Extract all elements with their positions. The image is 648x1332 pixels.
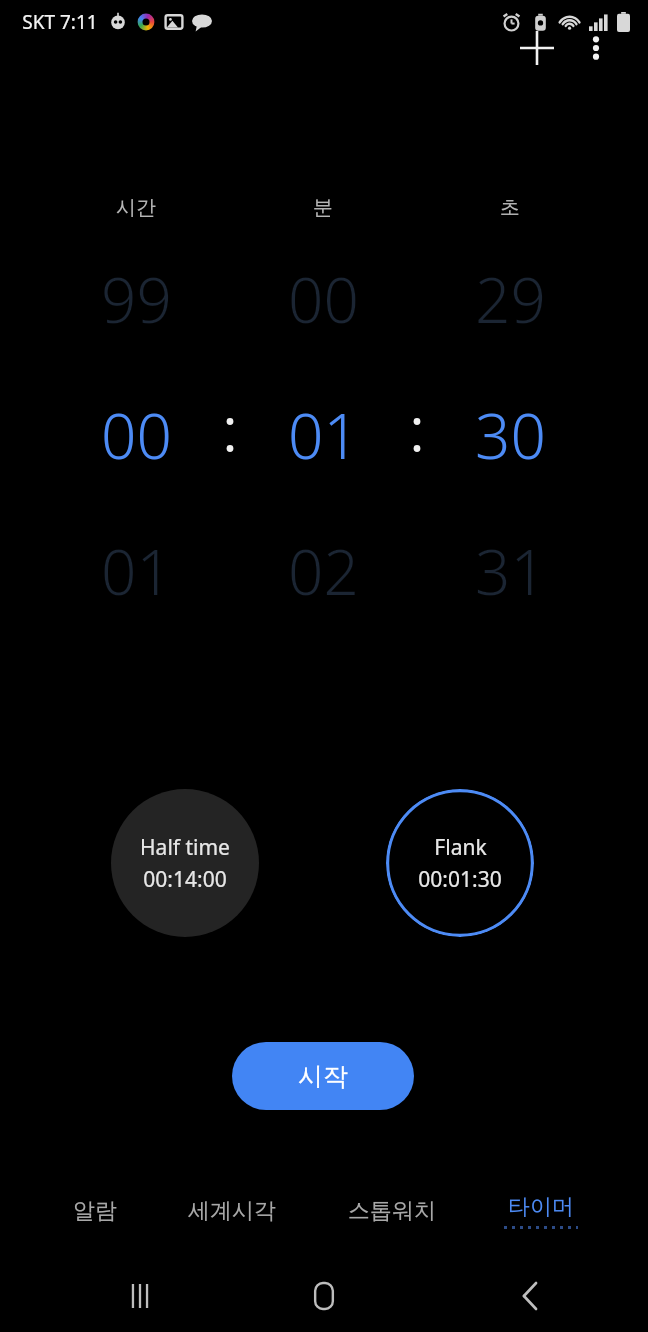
staticText: 타이머 [508,1193,574,1221]
staticText: 초 [500,195,520,220]
staticText: 세계시각 [188,1197,276,1225]
button[interactable]: Add preset timer [506,17,568,79]
staticText: 99 [101,257,172,341]
staticText: 02 [288,529,359,613]
staticText: 31 [475,529,546,613]
staticText: 00:14:00 [143,865,227,894]
button[interactable]: Flank [386,789,534,937]
button[interactable]: Back [500,1260,560,1332]
staticText: 00 [288,257,359,341]
button[interactable]: Time wheel [430,248,590,628]
button[interactable]: Time wheel [56,248,216,628]
button[interactable]: More options [566,18,626,78]
staticText: 스톱워치 [348,1197,436,1225]
staticText: 알람 [73,1197,117,1225]
button[interactable]: Time wheel [243,248,403,628]
button[interactable]: 세계시각 [157,1182,307,1240]
staticText: 01 [101,529,172,613]
staticText: 00 [101,393,172,477]
staticText: 01 [288,393,359,477]
staticText: 00:01:30 [418,865,502,894]
button[interactable]: 시작 [232,1042,414,1110]
button[interactable]: Recent apps [110,1260,170,1332]
staticText: SKT 7:11 [22,9,98,35]
button[interactable]: 타이머 [466,1182,616,1240]
staticText: 29 [475,257,546,341]
button[interactable]: Home [289,1260,359,1332]
staticText: 시작 [298,1061,348,1092]
staticText: 시간 [116,195,156,220]
staticText: 분 [313,195,333,220]
staticText: 30 [475,393,546,477]
button[interactable]: 알람 [20,1182,170,1240]
button[interactable]: Half time [111,789,259,937]
staticText: Flank [434,833,487,862]
staticText: Half time [140,833,230,862]
button[interactable]: 스톱워치 [317,1182,467,1240]
